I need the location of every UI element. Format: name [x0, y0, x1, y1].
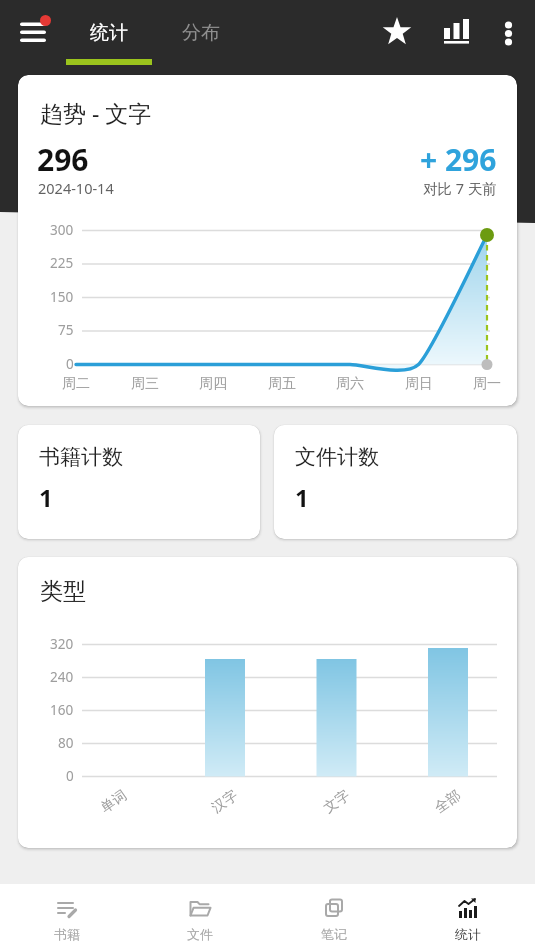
button[interactable]: [434, 9, 482, 57]
button[interactable]: 统计: [66, 6, 152, 59]
staticText: 单词: [97, 787, 131, 817]
staticText: 160: [50, 701, 74, 719]
staticText: 文件: [187, 926, 213, 942]
staticText: 汉字: [208, 787, 242, 817]
button[interactable]: 分布: [158, 6, 244, 59]
staticText: 类型: [40, 577, 86, 606]
staticText: 296: [37, 139, 89, 180]
staticText: 统计: [90, 21, 128, 45]
staticText: 1: [39, 481, 53, 514]
staticText: 文字: [320, 787, 354, 817]
staticText: 周日: [405, 375, 433, 393]
button[interactable]: [373, 9, 421, 57]
button[interactable]: 统计: [401, 884, 535, 951]
staticText: 150: [50, 288, 74, 306]
button[interactable]: 笔记: [267, 884, 401, 951]
staticText: 75: [58, 321, 74, 339]
staticText: 320: [50, 635, 74, 653]
staticText: 书籍: [54, 926, 80, 942]
button[interactable]: 书籍计数: [18, 425, 260, 539]
staticText: 1: [295, 481, 309, 514]
staticText: 周二: [62, 375, 90, 393]
staticText: 周六: [336, 375, 364, 393]
staticText: 周一: [473, 375, 501, 393]
staticText: 书籍计数: [39, 444, 123, 470]
staticText: 全部: [431, 787, 465, 817]
staticText: 笔记: [321, 926, 347, 942]
staticText: 趋势 - 文字: [40, 97, 152, 128]
staticText: 225: [50, 254, 74, 272]
staticText: + 296: [420, 139, 497, 180]
staticText: 文件计数: [295, 444, 379, 470]
staticText: 统计: [455, 926, 481, 942]
staticText: 周四: [199, 375, 227, 393]
button[interactable]: 书籍: [0, 884, 133, 951]
staticText: 300: [50, 221, 74, 239]
staticText: 对比 7 天前: [423, 178, 497, 198]
button[interactable]: 文件: [133, 884, 267, 951]
staticText: 2024-10-14: [38, 178, 114, 198]
button[interactable]: 文件计数: [274, 425, 517, 539]
staticText: 0: [66, 355, 74, 373]
button[interactable]: [490, 9, 530, 57]
button[interactable]: 趋势 - 文字: [18, 75, 517, 406]
staticText: 周五: [268, 375, 296, 393]
staticText: 240: [50, 668, 74, 686]
button[interactable]: [9, 9, 57, 57]
staticText: 周三: [131, 375, 159, 393]
button[interactable]: 类型: [18, 557, 517, 848]
staticText: 80: [58, 734, 74, 752]
staticText: 0: [66, 767, 74, 785]
staticText: 分布: [182, 21, 220, 45]
